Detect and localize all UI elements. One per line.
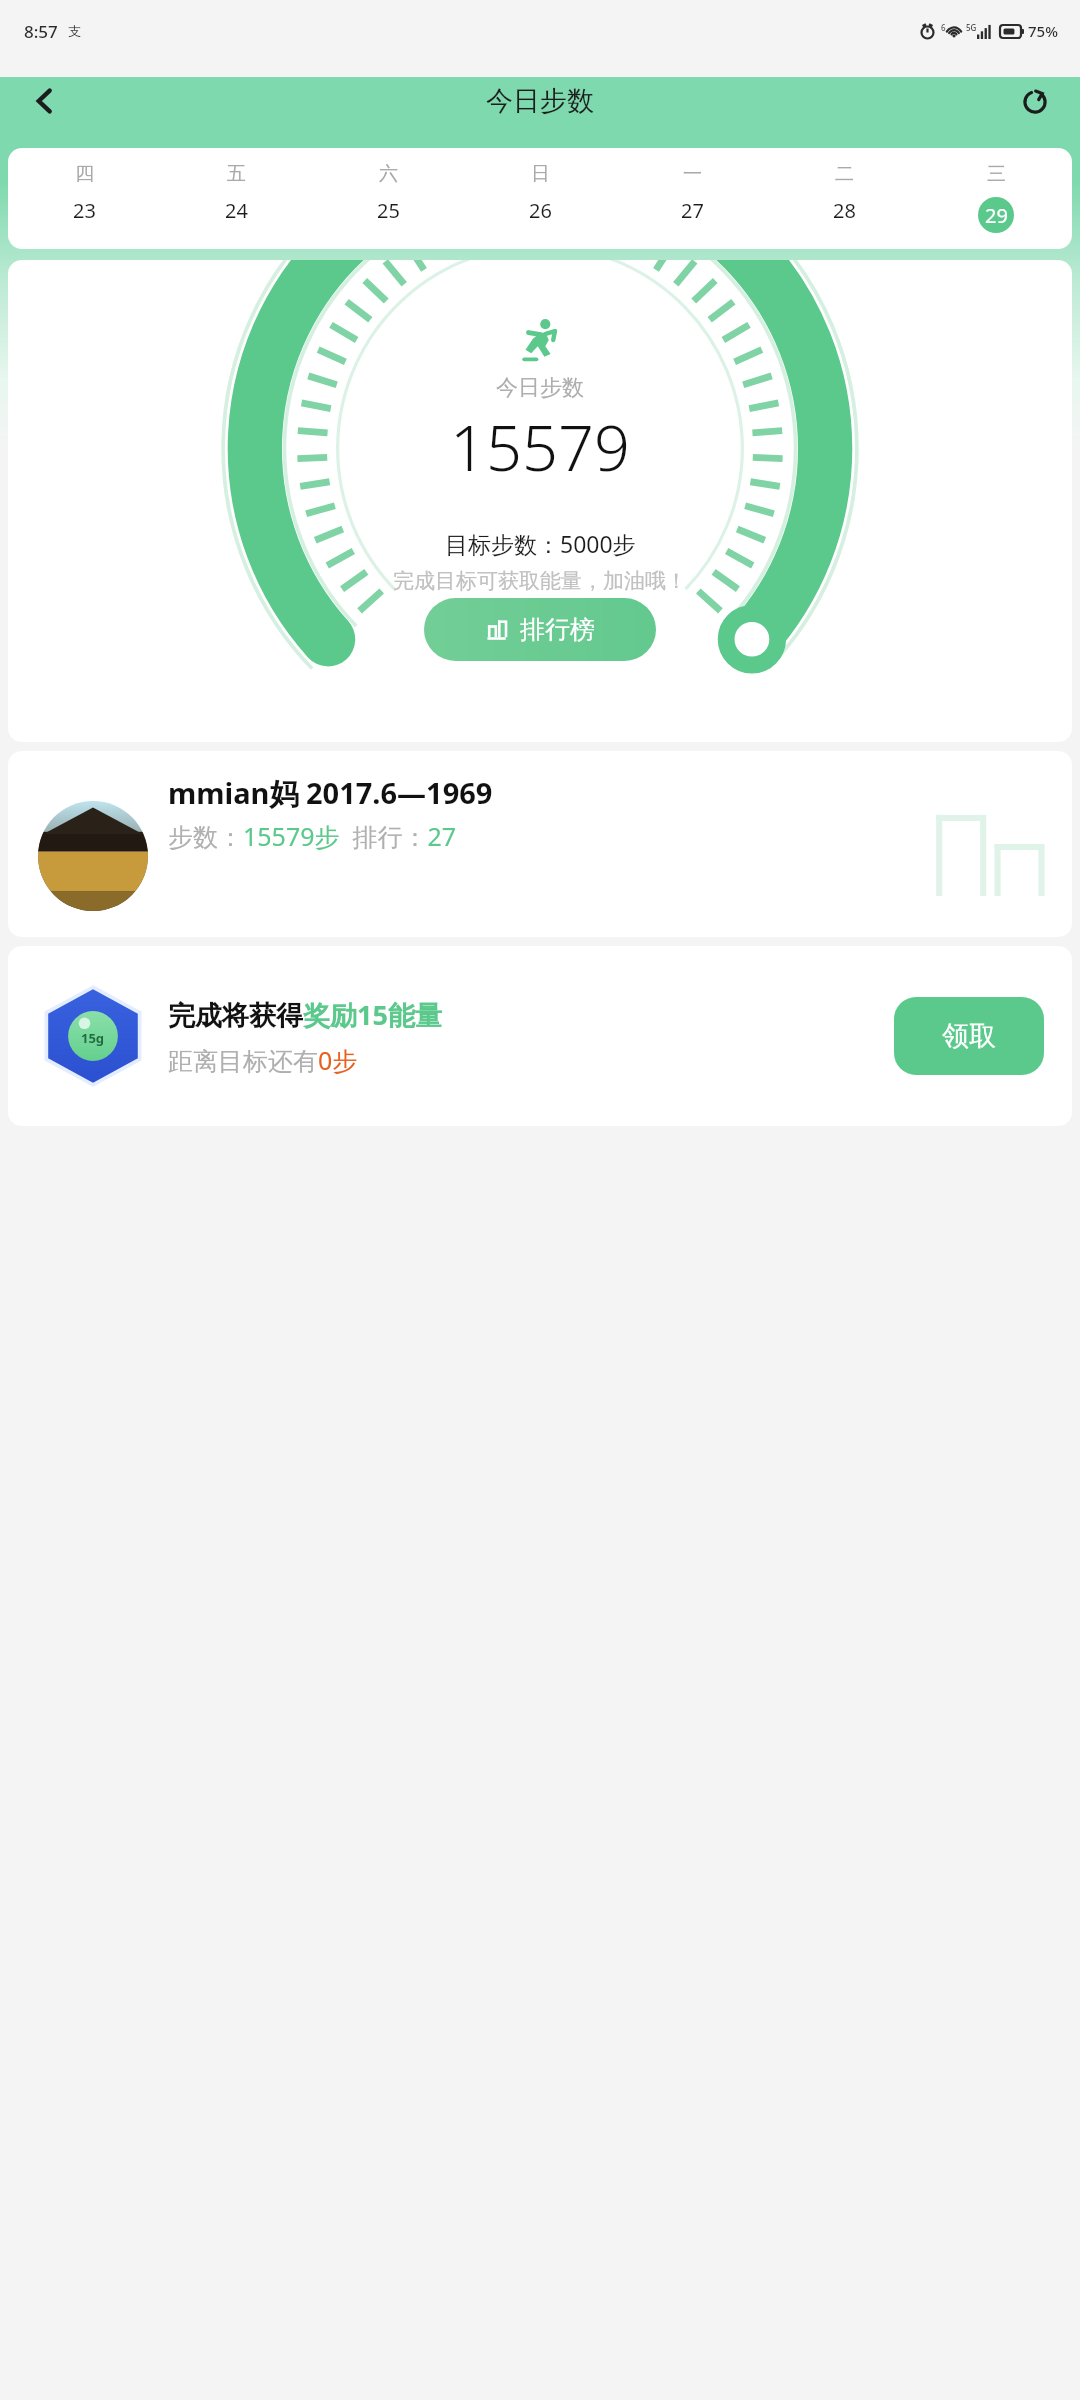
button[interactable]: 领取 [894,997,1044,1075]
staticText: 支 [68,23,81,39]
staticText: 目标步数：5000步 [445,528,636,559]
staticText: 6 [941,22,946,33]
staticText: 一 [683,162,702,186]
staticText: mmian妈 2017.6—1969 [168,773,493,813]
button[interactable]: Back [14,70,76,132]
staticText: 六 [379,162,398,186]
button[interactable]: 排行榜 [424,598,656,661]
staticText: 25 [377,197,400,224]
staticText: 24 [225,197,248,224]
staticText: 完成将获得奖励15能量 [168,996,442,1033]
staticText: 完成目标可获取能量，加油哦！ [393,568,687,594]
staticText: 15579 [450,404,630,490]
staticText: 75% [1028,21,1058,41]
staticText: 日 [531,162,550,186]
staticText: 15g [81,1029,105,1047]
staticText: 今日步数 [496,374,584,402]
staticText: 步数：15579步 排行：27 [168,819,457,853]
staticText: 28 [833,197,856,224]
staticText: 四 [75,162,94,186]
staticText: 五 [227,162,246,186]
staticText: 三 [987,162,1006,186]
staticText: 26 [529,197,552,224]
staticText: 5G [966,22,977,33]
staticText: 29 [985,202,1008,229]
button[interactable]: Share [1004,70,1066,132]
staticText: 23 [73,197,96,224]
button[interactable]: 四 [8,148,1072,249]
staticText: 27 [681,197,704,224]
staticText: 排行榜 [520,614,595,645]
staticText: 领取 [942,1019,996,1053]
staticText: 今日步数 [486,84,594,118]
staticText: 8:57 [24,20,58,43]
staticText: 距离目标还有0步 [168,1043,358,1077]
button[interactable]: mmian妈 2017.6—1969 [8,751,1072,937]
staticText: 二 [835,162,854,186]
